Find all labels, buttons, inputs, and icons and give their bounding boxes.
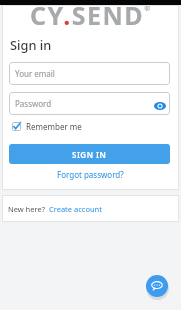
button[interactable]: Your email (9, 62, 170, 85)
staticText: Remember me (26, 121, 82, 132)
staticText: New here? (8, 204, 45, 214)
staticText: SIGN IN (72, 149, 107, 160)
button[interactable]: Forgot password? (57, 169, 124, 180)
button[interactable]: Remember me (12, 121, 82, 132)
button[interactable] (146, 275, 168, 297)
button[interactable]: Create account (49, 204, 102, 214)
staticText: CY.SEND® (30, 0, 152, 32)
staticText: Password (15, 98, 52, 109)
button[interactable]: Password (9, 92, 170, 115)
staticText: Sign in (10, 36, 52, 53)
button[interactable]: SIGN IN (9, 144, 170, 164)
staticText: Your email (15, 68, 55, 79)
